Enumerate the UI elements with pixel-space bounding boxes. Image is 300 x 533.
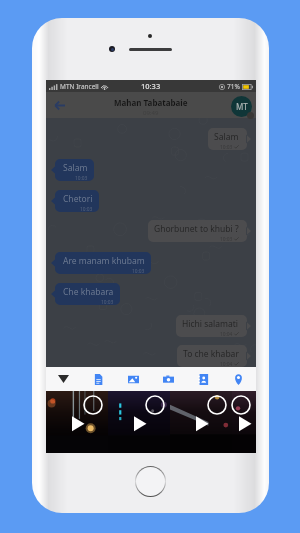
button[interactable]: Contact [186, 367, 221, 391]
staticText: Hichi salamati [182, 318, 239, 330]
staticText: 10:03 [220, 144, 233, 150]
staticText: Mahan Tabatabaie [114, 97, 188, 108]
staticText: Ghorbunet to khubi ? [154, 223, 239, 235]
button[interactable]: Media 3 [170, 391, 232, 453]
button[interactable]: Profile [231, 96, 252, 117]
staticText: Are manam khubam [63, 255, 145, 267]
staticText: 10:04 [220, 331, 233, 337]
button[interactable]: Salam [208, 128, 251, 150]
staticText: 10:03 [101, 299, 114, 305]
staticText: 10:04 [220, 361, 233, 367]
button[interactable]: Media 2 [108, 391, 170, 453]
staticText: MTN Irancell [60, 82, 99, 91]
staticText: To che khabar [183, 348, 239, 360]
button[interactable]: Hichi salamati [176, 315, 251, 337]
staticText: MT [236, 101, 248, 112]
staticText: Chetori [63, 193, 93, 205]
staticText: 10:03 [220, 236, 233, 242]
button[interactable]: Location [221, 367, 256, 391]
button[interactable]: Ghorbunet to khubi ? [148, 220, 251, 242]
staticText: 10:03 [75, 175, 88, 181]
staticText: Salam [63, 162, 88, 174]
button[interactable]: Chetori [51, 190, 99, 212]
button[interactable]: Media 1 [46, 391, 108, 453]
staticText: 10:03 [80, 206, 93, 212]
staticText: Che khabara [63, 286, 114, 298]
button[interactable]: Are manam khubam [51, 252, 151, 274]
button[interactable]: To che khabar [177, 345, 251, 367]
staticText: 10:03 [132, 268, 145, 274]
button[interactable]: Document [81, 367, 116, 391]
staticText: 71% [227, 82, 240, 91]
button[interactable]: Salam [51, 159, 94, 181]
staticText: 10:33 [141, 81, 161, 91]
button[interactable]: Media 4 [232, 391, 256, 453]
button[interactable]: Gallery [116, 367, 151, 391]
button[interactable]: Collapse [46, 367, 81, 391]
button[interactable]: Che khabara [51, 283, 120, 305]
staticText: Salam [214, 131, 239, 143]
button[interactable]: Back [51, 97, 67, 113]
button[interactable]: Camera [151, 367, 186, 391]
